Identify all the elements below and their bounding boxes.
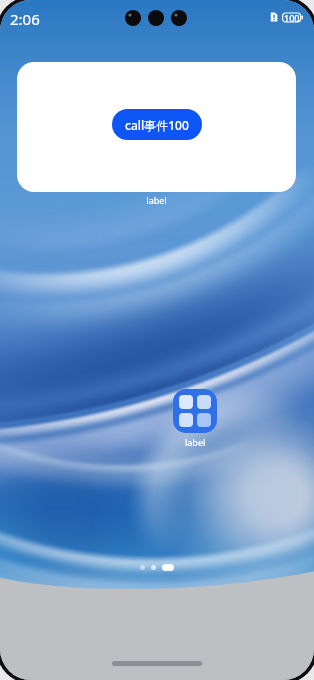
button[interactable]: label — [168, 389, 222, 448]
staticText: 2:06 — [10, 9, 40, 29]
button[interactable]: call事件100 — [17, 62, 296, 192]
staticText: label — [185, 436, 206, 448]
staticText: 100 — [284, 12, 300, 24]
button[interactable]: call事件100 — [112, 109, 202, 140]
staticText: label — [17, 194, 296, 206]
staticText: call事件100 — [125, 117, 189, 133]
